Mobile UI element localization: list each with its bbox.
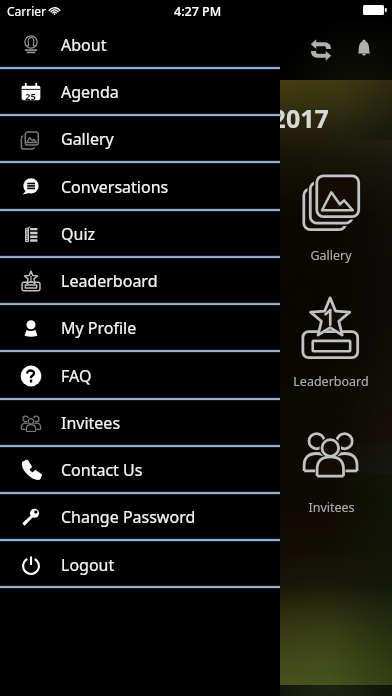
button[interactable]: Leaderboard	[275, 300, 387, 390]
staticText: Invitees	[308, 499, 355, 516]
button[interactable]: Leaderboard	[0, 257, 280, 304]
button[interactable]: Invitees	[275, 426, 387, 516]
staticText: FAQ	[61, 365, 92, 387]
button[interactable]: 25	[0, 68, 280, 115]
button[interactable]: FAQ	[0, 352, 280, 399]
staticText: Quiz	[61, 223, 96, 245]
button[interactable]: Contact Us	[0, 446, 280, 493]
button[interactable]: Notifications	[344, 30, 383, 69]
staticText: Gallery	[310, 247, 352, 264]
staticText: My Profile	[61, 317, 137, 339]
staticText: Change Password	[61, 506, 196, 528]
staticText: Contact Us	[61, 459, 143, 481]
staticText: Leaderboard	[61, 270, 158, 292]
staticText: Summit 2017	[168, 101, 329, 135]
button[interactable]: Gallery	[275, 174, 387, 264]
button[interactable]: My Profile	[0, 304, 280, 351]
staticText: Invitees	[61, 412, 121, 434]
staticText: Logout	[61, 554, 115, 576]
staticText: 4:27 PM	[174, 3, 222, 20]
button[interactable]: Sync	[301, 30, 340, 69]
staticText: Leaderboard	[293, 373, 369, 390]
staticText: About	[61, 34, 107, 56]
button[interactable]: Gallery	[0, 115, 280, 162]
button[interactable]: Quiz	[0, 210, 280, 257]
staticText: Agenda	[61, 81, 119, 103]
button[interactable]: About	[0, 21, 280, 68]
staticText: Carrier	[7, 3, 47, 19]
button[interactable]: Change Password	[0, 493, 280, 540]
button[interactable]: Logout	[0, 541, 280, 588]
staticText: Conversations	[61, 176, 169, 198]
staticText: Gallery	[61, 128, 114, 150]
button[interactable]: Conversations	[0, 163, 280, 210]
staticText: 25	[25, 90, 36, 103]
button[interactable]: Invitees	[0, 399, 280, 446]
